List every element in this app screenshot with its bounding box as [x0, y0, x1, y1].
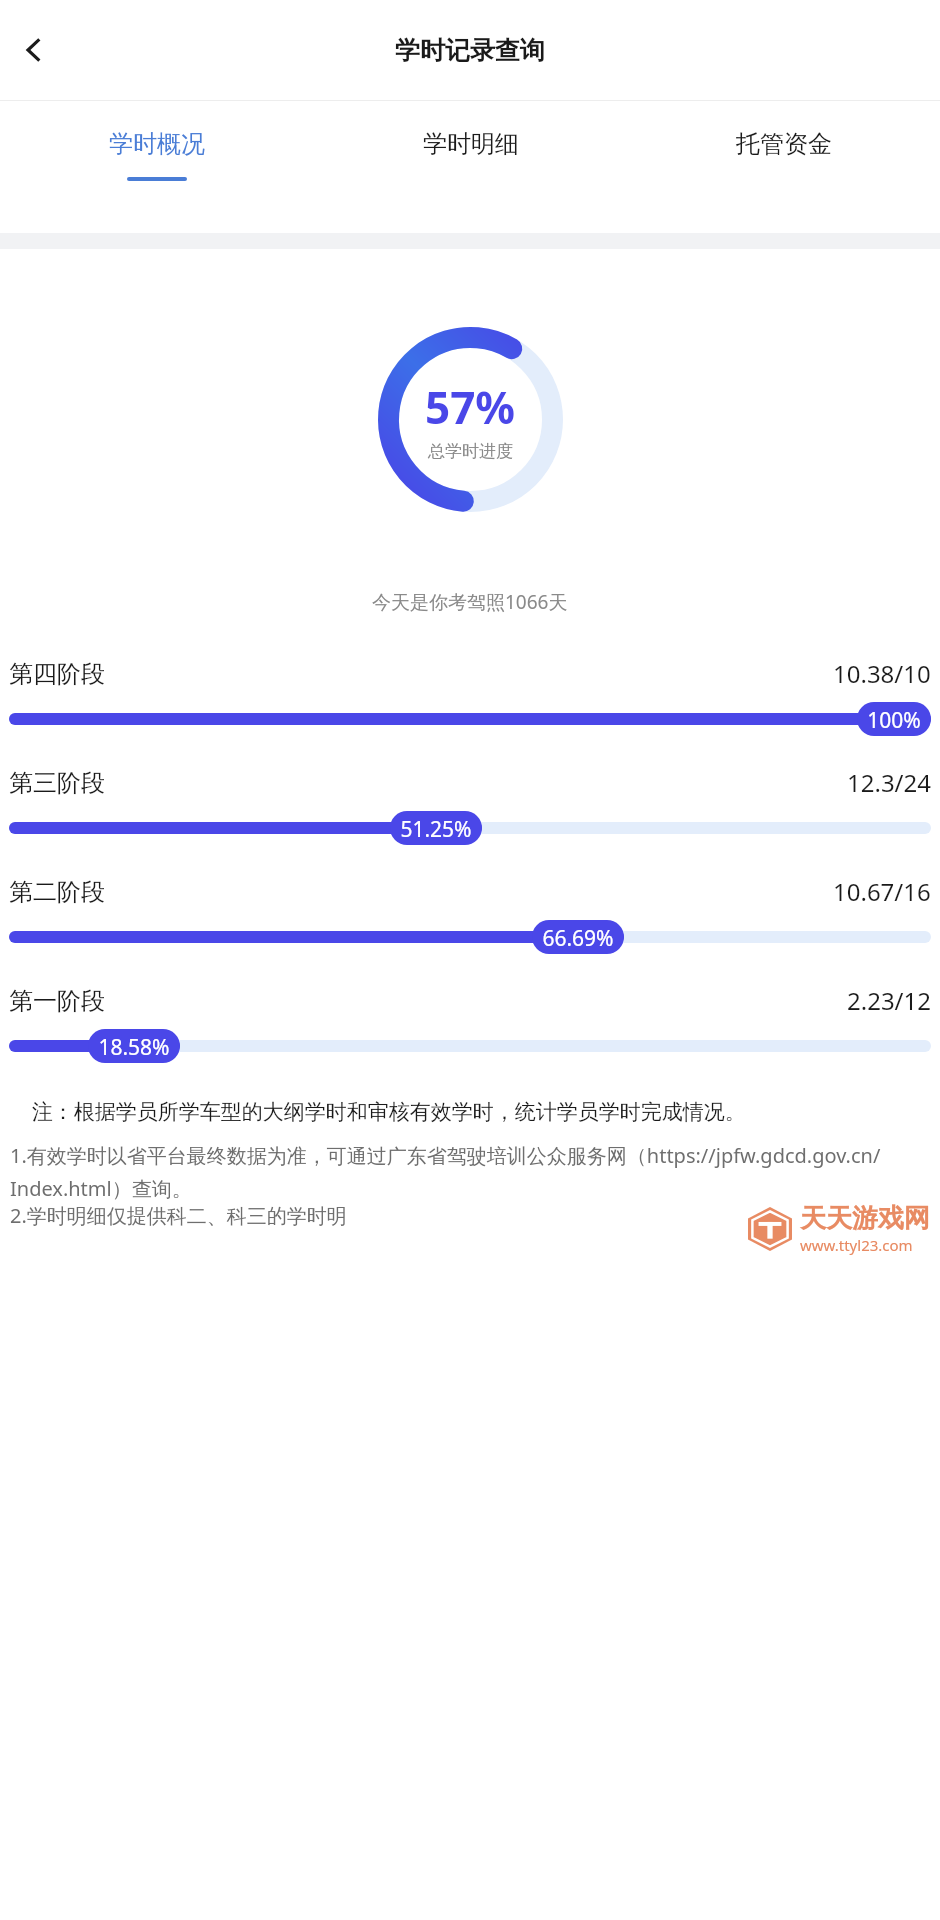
staticText: 天天游戏网: [800, 1202, 930, 1235]
button[interactable]: Back: [6, 22, 62, 78]
button[interactable]: 学时明细: [314, 101, 627, 233]
staticText: 托管资金: [736, 129, 832, 159]
staticText: 第三阶段: [9, 768, 105, 798]
staticText: 2.23/12: [847, 984, 931, 1017]
staticText: 2.学时明细仅提供科二、科三的学时明: [10, 1202, 347, 1229]
staticText: 学时明细: [423, 129, 519, 159]
staticText: 总学时进度: [428, 441, 513, 462]
staticText: 注：根据学员所学车型的大纲学时和审核有效学时，统计学员学时完成情况。: [10, 1097, 746, 1126]
staticText: 第二阶段: [9, 877, 105, 907]
staticText: 51.25%: [400, 815, 472, 841]
staticText: 66.69%: [542, 924, 614, 950]
staticText: 12.3/24: [847, 766, 931, 799]
staticText: www.ttyl23.com: [800, 1235, 913, 1255]
staticText: 今天是你考驾照1066天: [372, 589, 568, 615]
staticText: 第一阶段: [9, 986, 105, 1016]
staticText: 100%: [867, 706, 921, 732]
button[interactable]: 学时概况: [0, 101, 314, 233]
staticText: 18.58%: [98, 1033, 170, 1059]
staticText: 第四阶段: [9, 659, 105, 689]
staticText: 10.38/10: [833, 657, 931, 690]
staticText: 1.有效学时以省平台最终数据为准，可通过广东省驾驶培训公众服务网（https:/…: [10, 1142, 930, 1202]
button[interactable]: 托管资金: [627, 101, 940, 233]
staticText: 10.67/16: [833, 875, 931, 908]
staticText: 57%: [425, 377, 516, 437]
staticText: 学时记录查询: [395, 35, 545, 66]
staticText: 学时概况: [109, 129, 205, 159]
